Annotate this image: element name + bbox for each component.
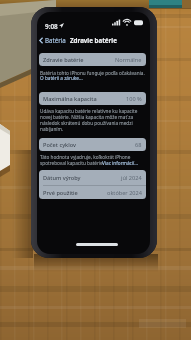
- staticText: 9:08: [45, 22, 58, 31]
- staticText: novej batérie. Nižšia kapacita môže mať …: [40, 114, 134, 120]
- staticText: Maximálna kapacita: [43, 95, 97, 103]
- staticText: Dátum výroby: [43, 174, 81, 182]
- button[interactable]: O batérii a záruke…: [40, 75, 83, 81]
- staticText: 68: [135, 141, 142, 149]
- other: Back: [39, 37, 43, 44]
- staticText: júl 2024: [121, 174, 142, 182]
- staticText: nabíjaním.: [40, 126, 64, 132]
- button[interactable]: Zdravie batérie: [39, 53, 146, 66]
- staticText: Počet cyklov: [43, 141, 76, 149]
- staticText: Batéria: [45, 36, 66, 44]
- button[interactable]: Dátum výroby: [43, 170, 142, 185]
- staticText: Udáva kapacitu batérie relatívne ku kapa…: [40, 108, 138, 114]
- staticText: Prvé použitie: [43, 189, 78, 197]
- staticText: Zdravie batérie: [70, 36, 117, 44]
- staticText: spotreboval kapacitu batérie.: [40, 160, 105, 166]
- staticText: následok skrátenú dobu používania medzi: [40, 120, 133, 126]
- staticText: Táto hodnota vyjadruje, koľkokrát iPhone: [40, 154, 131, 160]
- staticText: Zdravie batérie: [43, 56, 84, 64]
- staticText: Viac informácií…: [102, 160, 139, 166]
- button[interactable]: Viac informácií…: [102, 160, 139, 166]
- button[interactable]: Počet cyklov: [39, 138, 146, 151]
- button[interactable]: Back: [39, 35, 117, 45]
- button[interactable]: Maximálna kapacita: [39, 92, 146, 105]
- staticText: 100 %: [126, 95, 142, 103]
- staticText: Batéria tohto iPhonu funguje podľa očaká…: [40, 70, 145, 76]
- staticText: Normálne: [115, 56, 142, 64]
- staticText: október 2024: [107, 189, 142, 197]
- button[interactable]: Prvé použitie: [43, 186, 142, 199]
